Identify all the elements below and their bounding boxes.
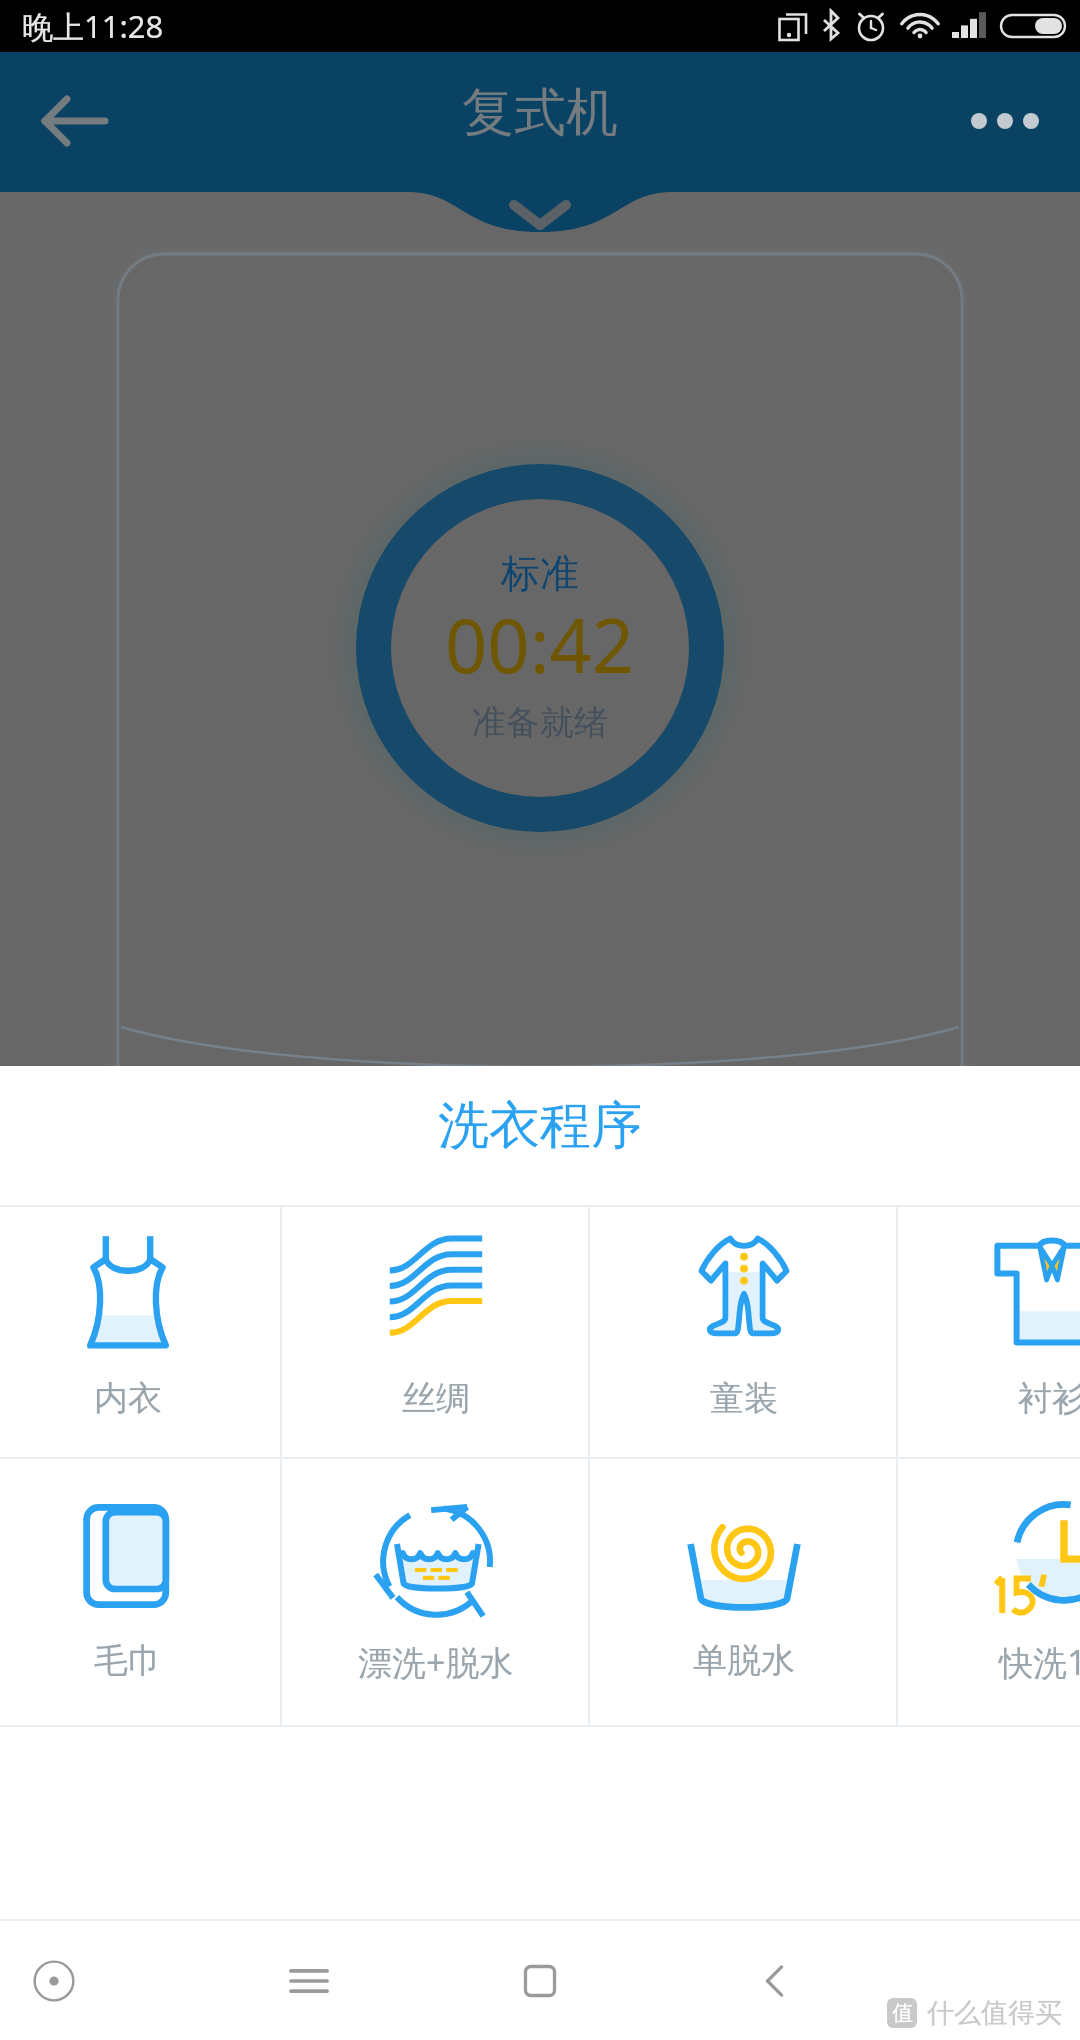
staticText: 晚上11:28 — [22, 5, 164, 47]
button[interactable]: 丝绸 — [282, 1207, 590, 1457]
staticText: 丝绸 — [402, 1377, 470, 1420]
button[interactable]: Recent apps — [249, 1921, 369, 2040]
staticText: 洗衣程序 — [438, 1094, 642, 1158]
button[interactable]: 漂洗+脱水 — [282, 1459, 590, 1725]
staticText: 什么值得买 — [927, 1996, 1062, 2030]
button[interactable]: Expand — [460, 170, 620, 260]
staticText: 漂洗+脱水 — [358, 1639, 514, 1685]
button[interactable]: 内衣 — [0, 1207, 282, 1457]
staticText: 标准 — [501, 549, 579, 598]
staticText: 童装 — [710, 1377, 778, 1420]
staticText: 值 — [892, 2000, 913, 2026]
button[interactable]: 单脱水 — [590, 1459, 898, 1725]
button[interactable]: 童装 — [590, 1207, 898, 1457]
staticText: 衬衫 — [1018, 1377, 1080, 1420]
button[interactable]: 快洗15 — [898, 1459, 1080, 1725]
button[interactable]: More options — [930, 52, 1080, 190]
staticText: 准备就绪 — [472, 701, 608, 744]
staticText: 毛巾 — [94, 1639, 162, 1682]
staticText: 单脱水 — [693, 1639, 795, 1682]
button[interactable]: 毛巾 — [0, 1459, 282, 1725]
button[interactable]: Back — [715, 1921, 835, 2040]
button[interactable]: Assistant — [0, 1921, 114, 2040]
staticText: 内衣 — [94, 1377, 162, 1420]
staticText: 复式机 — [462, 80, 618, 146]
staticText: 快洗15 — [999, 1639, 1080, 1685]
button[interactable]: Home — [480, 1921, 600, 2040]
button[interactable]: Back — [0, 52, 150, 190]
staticText: 00:42 — [445, 594, 635, 695]
button[interactable]: 衬衫 — [898, 1207, 1080, 1457]
